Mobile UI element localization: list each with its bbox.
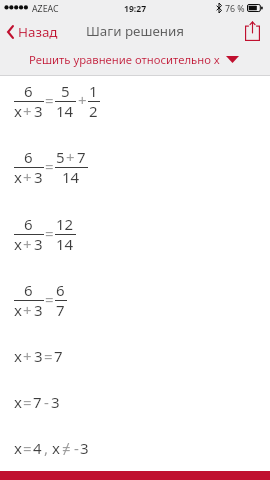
staticText: 4 [33,438,42,458]
staticText: 14 [56,101,74,121]
staticText: 76 % [225,3,245,15]
staticText: + [23,346,32,366]
staticText: - [44,392,49,412]
staticText: + [23,101,32,121]
staticText: 3 [34,300,43,320]
button[interactable]: Назад [0,22,66,42]
staticText: 3 [80,438,89,458]
staticText: 1 [89,81,98,101]
staticText: 6 [24,280,33,300]
staticText: AZEAC [32,3,59,15]
staticText: 3 [34,167,43,187]
staticText: 6 [56,280,65,300]
staticText: 3 [34,346,43,366]
staticText: = [45,223,54,243]
staticText: 6 [24,81,33,101]
staticText: = [44,346,53,366]
staticText: 3 [34,101,43,121]
staticText: x [14,346,22,366]
staticText: x [14,234,22,254]
staticText: Шаги решения [86,22,185,40]
staticText: = [45,156,54,176]
staticText: 19:27 [124,3,147,15]
staticText: 12 [56,214,74,234]
staticText: 7 [33,392,42,412]
staticText: 3 [51,392,60,412]
staticText: , [44,438,49,458]
staticText: Назад [18,23,58,41]
staticText: 2 [89,101,98,121]
staticText: 7 [56,300,65,320]
staticText: + [23,234,32,254]
staticText: x [14,392,22,412]
staticText: + [23,300,32,320]
staticText: ≠ [62,438,71,458]
staticText: Решить уравнение относительно x [29,52,220,67]
button[interactable]: Решить уравнение относительно x [29,52,239,67]
staticText: 5 [61,81,70,101]
staticText: + [23,167,32,187]
staticText: = [45,289,54,309]
staticText: = [23,438,32,458]
button[interactable]: Share [235,19,270,43]
staticText: 6 [24,147,33,167]
staticText: x [14,167,22,187]
staticText: = [23,392,32,412]
staticText: 6 [24,214,33,234]
staticText: 14 [56,234,74,254]
staticText: x [52,438,60,458]
staticText: 14 [62,167,80,187]
staticText: 7 [54,346,63,366]
staticText: 3 [34,234,43,254]
staticText: 5 [56,147,65,167]
staticText: + [66,147,75,167]
staticText: 7 [77,147,86,167]
staticText: = [45,90,54,110]
staticText: x [14,300,22,320]
staticText: - [74,438,79,458]
staticText: x [14,101,22,121]
staticText: x [14,438,22,458]
staticText: + [78,90,87,110]
